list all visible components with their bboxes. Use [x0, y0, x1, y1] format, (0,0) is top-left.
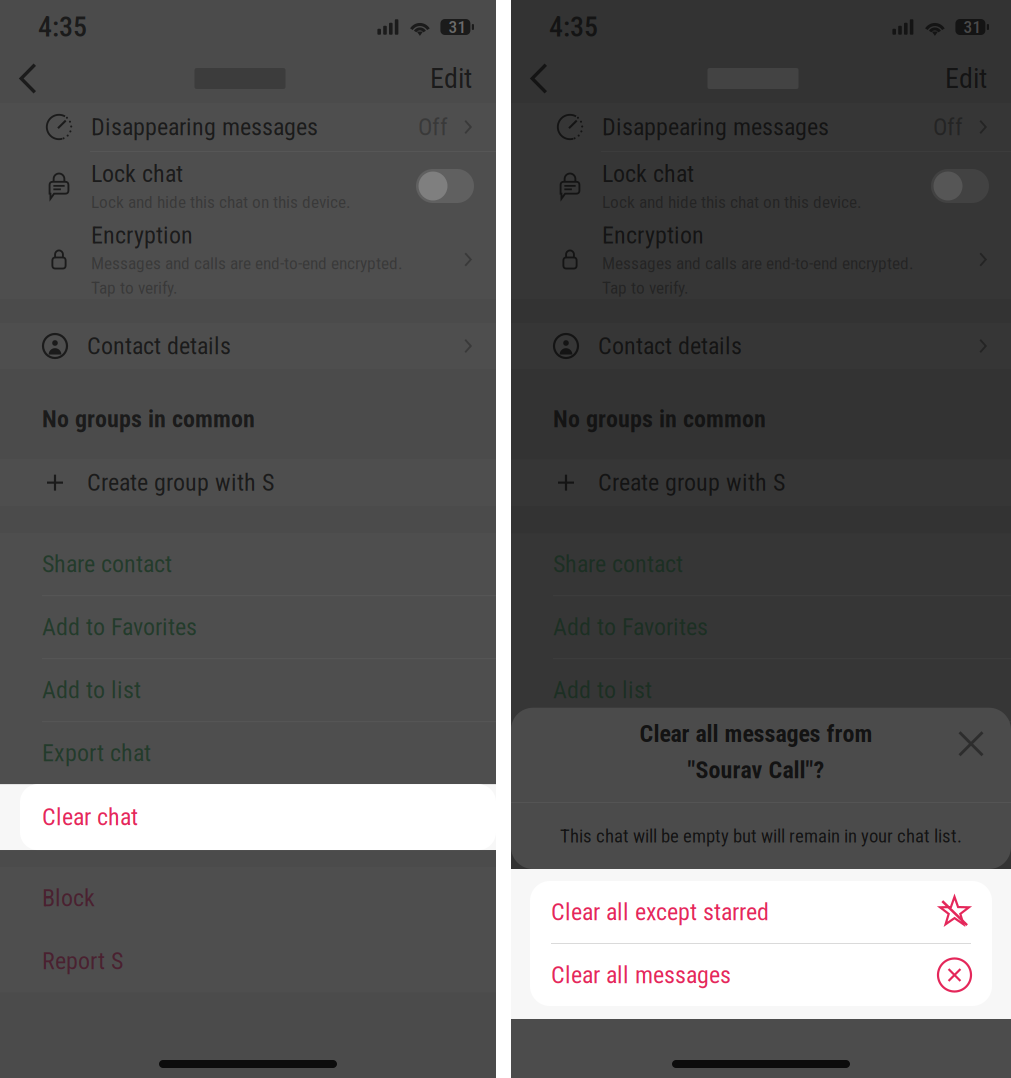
staticText: Encryption: [602, 221, 704, 249]
staticText: Lock chat: [602, 160, 694, 188]
button[interactable]: Edit: [430, 54, 472, 103]
staticText: Disappearing messages: [91, 113, 318, 141]
staticText: Share contact: [553, 550, 683, 578]
button[interactable]: Encryption: [511, 220, 1011, 299]
staticText: This chat will be empty but will remain …: [560, 825, 962, 847]
staticText: 4:35: [38, 11, 87, 43]
staticText: 31: [963, 17, 981, 37]
button[interactable]: Share contact: [511, 533, 1011, 595]
button[interactable]: Block: [0, 867, 496, 929]
button[interactable]: Encryption: [0, 220, 496, 299]
staticText: Messages and calls are end-to-end encryp…: [602, 253, 914, 274]
staticText: Report S: [42, 947, 123, 975]
staticText: Clear chat: [42, 803, 138, 831]
staticText: 4:35: [549, 11, 598, 43]
staticText: "Sourav Call"?: [687, 756, 824, 784]
button[interactable]: Clear all messages: [530, 944, 992, 1006]
button[interactable]: Contact details: [0, 323, 496, 369]
button[interactable]: Report S: [0, 930, 496, 992]
staticText: Lock and hide this chat on this device.: [602, 192, 862, 212]
button[interactable]: Share contact: [0, 533, 496, 595]
staticText: No groups in common: [553, 405, 766, 433]
staticText: Tap to verify.: [602, 278, 689, 298]
staticText: Add to Favorites: [42, 613, 197, 641]
button[interactable]: Clear chat: [20, 784, 496, 850]
staticText: Edit: [430, 62, 472, 95]
button[interactable]: Create group with S: [0, 459, 496, 506]
button[interactable]: Create group with S: [511, 459, 1011, 506]
button[interactable]: Add to Favorites: [511, 596, 1011, 658]
button[interactable]: Clear all except starred: [530, 881, 992, 943]
staticText: 31: [448, 17, 466, 37]
staticText: Lock and hide this chat on this device.: [91, 192, 351, 212]
staticText: Clear all messages from: [639, 720, 872, 748]
staticText: Clear all except starred: [551, 898, 769, 926]
staticText: Clear all messages: [551, 961, 731, 989]
staticText: Add to Favorites: [553, 613, 708, 641]
staticText: Add to list: [553, 676, 652, 704]
button[interactable]: Export chat: [511, 722, 1011, 784]
staticText: Encryption: [91, 221, 193, 249]
staticText: Off: [418, 113, 448, 141]
staticText: Add to list: [42, 676, 141, 704]
button[interactable]: Add to Favorites: [0, 596, 496, 658]
button[interactable]: Export chat: [0, 722, 496, 784]
button[interactable]: Lock chat: [0, 152, 496, 220]
button[interactable]: Lock chat: [511, 152, 1011, 220]
staticText: Share contact: [42, 550, 172, 578]
staticText: Disappearing messages: [602, 113, 829, 141]
button[interactable]: Disappearing messages: [511, 103, 1011, 151]
staticText: Block: [42, 884, 95, 912]
button[interactable]: Add to list: [511, 659, 1011, 721]
staticText: Create group with S: [598, 469, 785, 497]
button[interactable]: Disappearing messages: [0, 103, 496, 151]
staticText: Messages and calls are end-to-end encryp…: [91, 253, 403, 274]
button[interactable]: Edit: [945, 54, 987, 103]
staticText: Contact details: [598, 332, 742, 360]
button[interactable]: Add to list: [0, 659, 496, 721]
staticText: Tap to verify.: [91, 278, 178, 298]
staticText: Lock chat: [91, 160, 183, 188]
staticText: Create group with S: [87, 469, 274, 497]
staticText: Contact details: [87, 332, 231, 360]
staticText: No groups in common: [42, 405, 255, 433]
button[interactable]: Back: [6, 54, 50, 103]
button[interactable]: Close: [945, 717, 997, 771]
button[interactable]: Back: [517, 54, 561, 103]
staticText: Export chat: [553, 739, 662, 767]
staticText: Edit: [945, 62, 987, 95]
staticText: Off: [933, 113, 963, 141]
button[interactable]: Contact details: [511, 323, 1011, 369]
staticText: Export chat: [42, 739, 151, 767]
